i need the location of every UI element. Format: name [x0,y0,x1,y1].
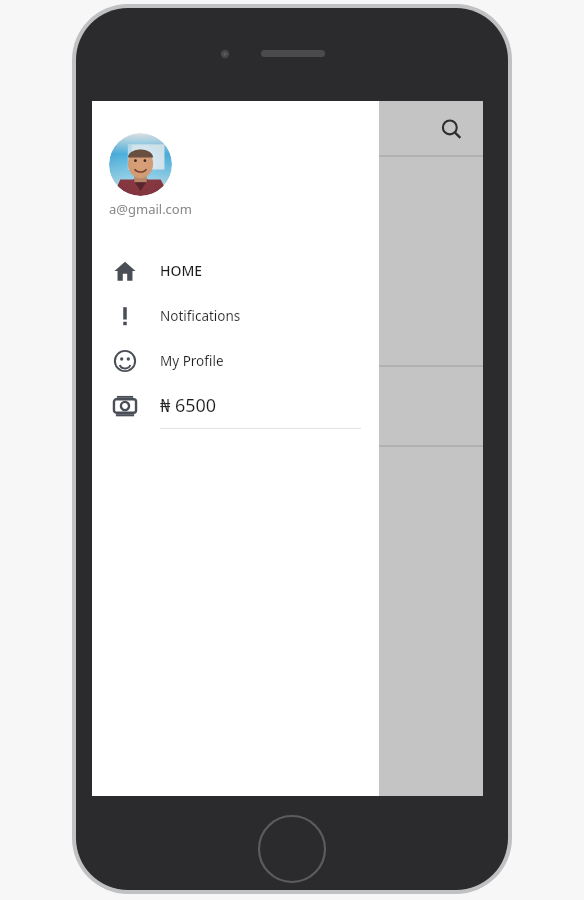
staticText: My Profile [160,352,224,370]
staticText: ₦ 6500 [160,393,217,418]
button[interactable]: Profile photo [109,133,172,196]
button[interactable]: Search [431,109,471,149]
staticText: Notifications [160,307,241,325]
button[interactable]: ₦ 6500 [92,383,379,428]
staticText: HOME [160,261,203,280]
button[interactable]: My Profile [92,338,379,383]
button[interactable]: Notifications [92,293,379,338]
button[interactable]: HOME [92,248,379,293]
staticText: a@gmail.com [109,200,192,218]
